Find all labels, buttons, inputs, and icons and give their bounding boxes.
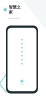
button[interactable]: 立即下载: [20, 79, 24, 85]
staticText: 智慧之家: [9, 5, 21, 14]
staticText: 随时随地 · 掌控你的智能生活: [8, 17, 20, 19]
button[interactable]: 智慧之家: [3, 7, 25, 13]
staticText: 立即下载: [20, 84, 24, 85]
